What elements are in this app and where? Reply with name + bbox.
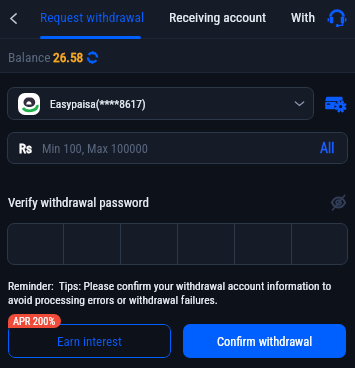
button[interactable]: Easypaisa(****8617) — [7, 87, 314, 120]
staticText: Confirm withdrawal — [217, 334, 313, 349]
button[interactable]: Refresh balance — [85, 50, 100, 65]
button[interactable]: Earn interest — [8, 324, 171, 358]
button[interactable]: Confirm withdrawal — [183, 324, 346, 358]
button[interactable]: Card settings — [320, 90, 347, 117]
staticText: Receiving account — [169, 9, 267, 25]
staticText: Min 100, Max 100000 — [42, 141, 148, 156]
staticText: All — [320, 140, 335, 156]
staticText: Reminder: Tips: Please confirm your with… — [8, 279, 347, 307]
button[interactable] — [178, 223, 234, 265]
staticText: Verify withdrawal password — [8, 195, 149, 210]
button[interactable]: Show password — [329, 193, 347, 211]
button[interactable] — [235, 223, 291, 265]
button[interactable] — [292, 223, 348, 265]
button[interactable]: With — [291, 0, 315, 33]
button[interactable] — [7, 223, 63, 265]
button[interactable] — [64, 223, 120, 265]
button[interactable]: Request withdrawal — [40, 0, 145, 33]
staticText: With — [291, 9, 315, 25]
button[interactable]: Customer service — [324, 5, 350, 31]
staticText: Earn interest — [57, 334, 122, 349]
button[interactable] — [121, 223, 177, 265]
staticText: APR 200% — [13, 315, 56, 327]
staticText: 26.58 — [53, 49, 84, 65]
button[interactable]: Rs — [7, 132, 348, 164]
button[interactable]: Back — [0, 0, 26, 36]
staticText: Request withdrawal — [40, 9, 145, 25]
button[interactable]: Receiving account — [169, 0, 267, 33]
staticText: Balance — [8, 49, 51, 65]
staticText: Rs — [19, 141, 32, 156]
staticText: Easypaisa(****8617) — [50, 97, 146, 110]
